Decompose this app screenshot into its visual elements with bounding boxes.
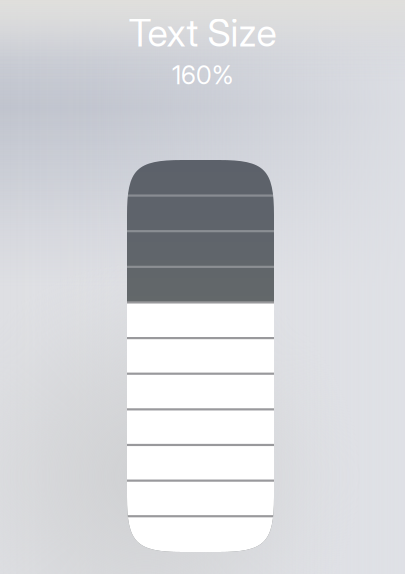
staticText: Text Size bbox=[128, 10, 276, 56]
staticText: 160% bbox=[172, 60, 233, 90]
button[interactable]: Text size, 160 percent bbox=[127, 160, 274, 552]
